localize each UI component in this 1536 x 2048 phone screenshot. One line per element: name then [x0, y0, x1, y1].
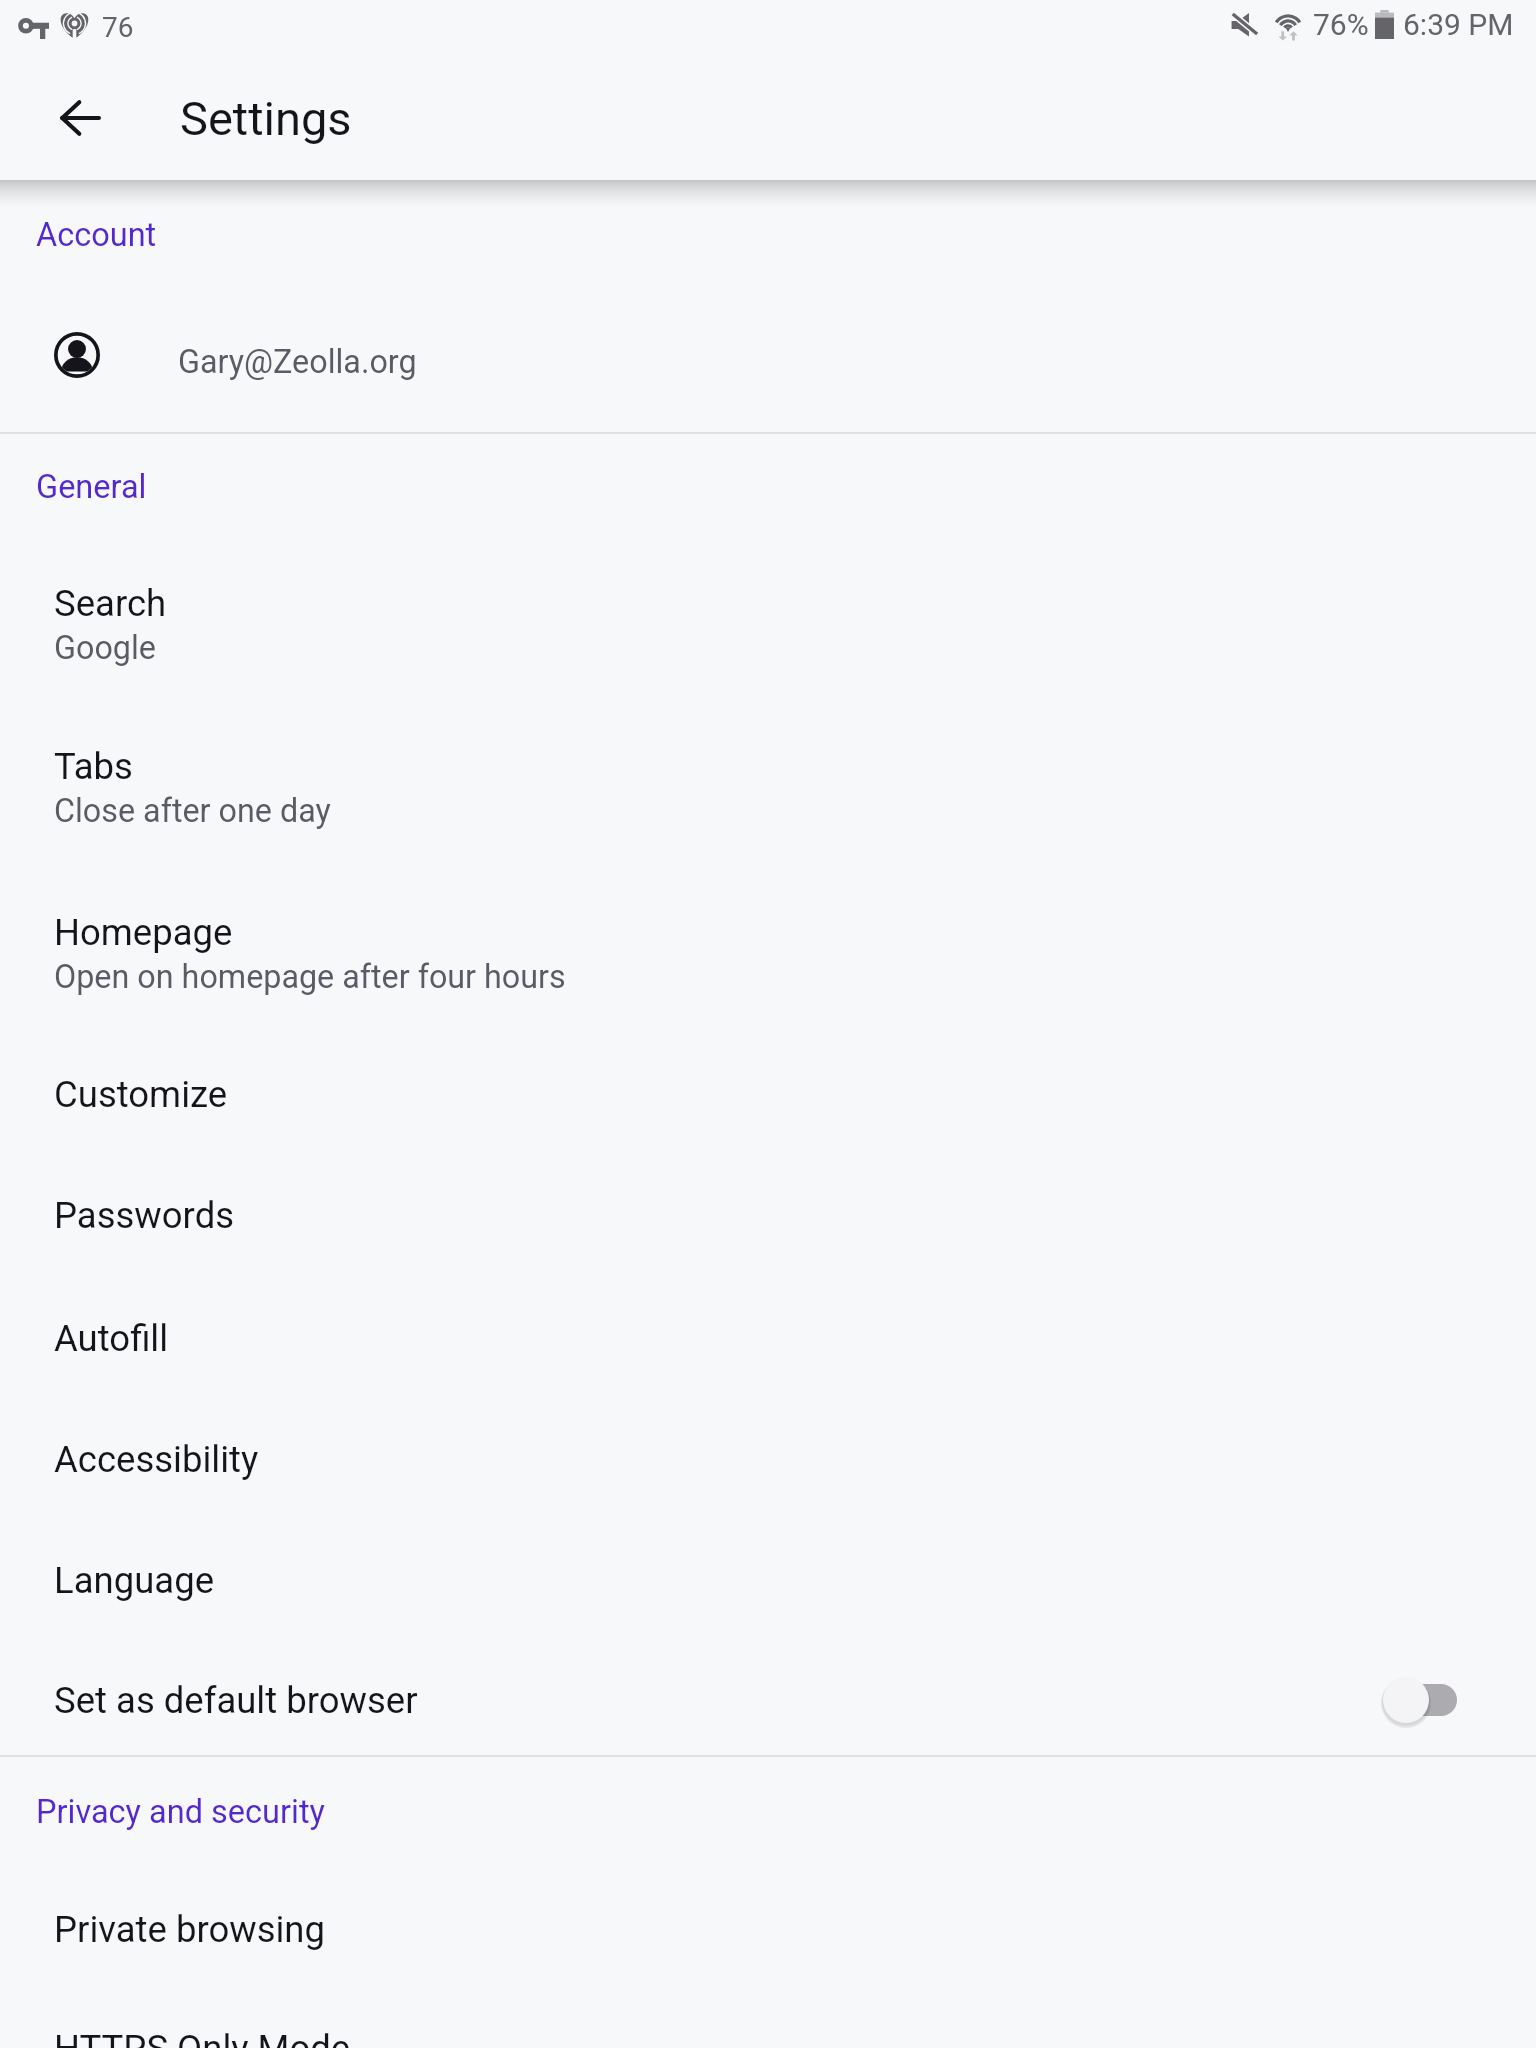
button[interactable]: Tabs	[0, 698, 1536, 850]
button[interactable]: Set as default browser	[0, 1639, 1536, 1760]
button[interactable]: Autofill	[0, 1277, 1536, 1398]
button[interactable]: Private browsing	[0, 1868, 1536, 1989]
staticText: HTTPS Only Mode	[54, 2027, 351, 2048]
staticText: Open on homepage after four hours	[54, 958, 566, 996]
button[interactable]: Language	[0, 1519, 1536, 1640]
button[interactable]: Passwords	[0, 1154, 1536, 1275]
button[interactable]: Navigate up	[37, 74, 124, 161]
staticText: Passwords	[54, 1194, 235, 1237]
staticText: Privacy and security	[36, 1793, 325, 1831]
staticText: Customize	[54, 1073, 228, 1116]
button[interactable]: Customize	[0, 1033, 1536, 1154]
staticText: Account	[36, 216, 157, 254]
staticText: 76	[102, 11, 134, 44]
button[interactable]: Gary@Zeolla.org	[0, 301, 1536, 409]
staticText: Search	[54, 582, 167, 625]
staticText: Tabs	[54, 745, 133, 788]
staticText: 76%	[1313, 7, 1369, 42]
staticText: 6:39 PM	[1403, 7, 1514, 42]
staticText: Google	[54, 629, 156, 667]
staticText: Set as default browser	[54, 1679, 418, 1722]
staticText: Accessibility	[54, 1438, 259, 1481]
staticText: Homepage	[54, 911, 233, 954]
staticText: Private browsing	[54, 1908, 326, 1951]
button[interactable]: Search	[0, 535, 1536, 687]
staticText: General	[36, 468, 147, 506]
staticText: Autofill	[54, 1317, 169, 1360]
staticText: Close after one day	[54, 792, 331, 830]
staticText: Gary@Zeolla.org	[178, 343, 417, 381]
button[interactable]: HTTPS Only Mode	[0, 1987, 1536, 2048]
button[interactable]: Accessibility	[0, 1398, 1536, 1519]
button[interactable]: Homepage	[0, 864, 1536, 1016]
staticText: Settings	[180, 91, 352, 146]
staticText: Language	[54, 1559, 214, 1602]
